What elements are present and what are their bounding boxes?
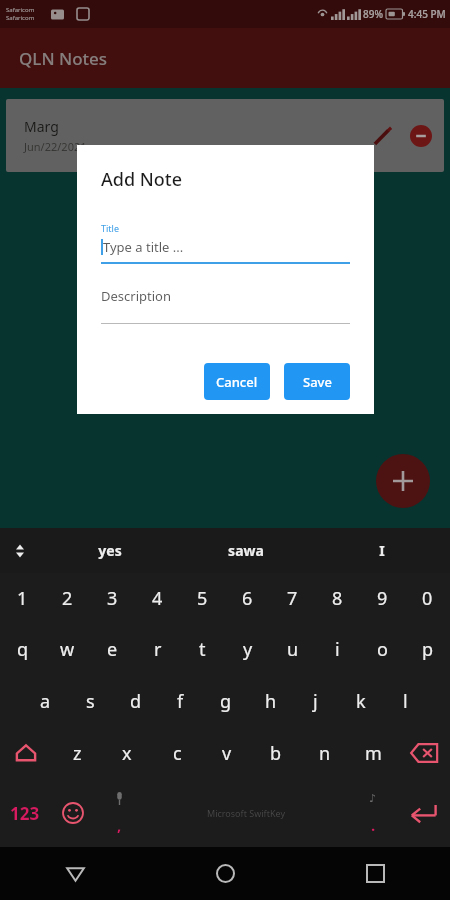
- button[interactable]: b: [251, 727, 300, 779]
- button[interactable]: 5: [180, 573, 225, 623]
- button[interactable]: o: [360, 623, 405, 675]
- staticText: w: [60, 637, 75, 662]
- button[interactable]: l: [383, 675, 428, 727]
- button[interactable]: Period and sticker: [350, 779, 396, 847]
- button[interactable]: Shift: [0, 727, 52, 779]
- staticText: 4:45 PM: [408, 7, 446, 21]
- button[interactable]: e: [90, 623, 135, 675]
- button[interactable]: g: [203, 675, 248, 727]
- button[interactable]: Microsoft SwiftKey: [142, 779, 350, 847]
- staticText: 89%: [363, 7, 383, 21]
- button[interactable]: Add note: [376, 454, 430, 508]
- button[interactable]: x: [102, 727, 152, 779]
- staticText: v: [222, 741, 232, 766]
- button[interactable]: f: [158, 675, 203, 727]
- staticText: QLN Notes: [19, 47, 108, 70]
- button[interactable]: z: [52, 727, 102, 779]
- button[interactable]: t: [180, 623, 225, 675]
- button[interactable]: 3: [90, 573, 135, 623]
- staticText: 0: [422, 586, 433, 611]
- button[interactable]: m: [349, 727, 398, 779]
- staticText: f: [177, 689, 184, 714]
- staticText: l: [403, 689, 408, 714]
- button[interactable]: c: [152, 727, 202, 779]
- button[interactable]: y: [225, 623, 270, 675]
- button[interactable]: Recent apps: [300, 847, 450, 900]
- button[interactable]: 7: [270, 573, 315, 623]
- staticText: z: [73, 741, 82, 766]
- staticText: 3: [107, 586, 118, 611]
- staticText: 7: [287, 586, 298, 611]
- staticText: 1: [17, 586, 28, 611]
- button[interactable]: Backspace: [398, 727, 450, 779]
- staticText: Title: [101, 222, 119, 234]
- staticText: 6: [242, 586, 253, 611]
- button[interactable]: Save: [284, 363, 350, 400]
- staticText: Description: [101, 287, 171, 305]
- button[interactable]: q: [0, 623, 45, 675]
- button[interactable]: 9: [360, 573, 405, 623]
- button[interactable]: Enter: [396, 779, 450, 847]
- staticText: x: [122, 741, 132, 766]
- button[interactable]: Back: [0, 847, 150, 900]
- staticText: e: [107, 637, 118, 662]
- button[interactable]: n: [300, 727, 349, 779]
- staticText: Type a title ...: [103, 238, 184, 256]
- staticText: 5: [197, 586, 208, 611]
- button[interactable]: sawa: [178, 528, 314, 573]
- staticText: t: [199, 637, 206, 662]
- button[interactable]: p: [405, 623, 450, 675]
- staticText: d: [130, 689, 142, 714]
- button[interactable]: r: [135, 623, 180, 675]
- staticText: k: [356, 689, 366, 714]
- button[interactable]: 2: [45, 573, 90, 623]
- button[interactable]: h: [248, 675, 293, 727]
- staticText: u: [287, 637, 299, 662]
- button[interactable]: 1: [0, 573, 45, 623]
- staticText: c: [173, 741, 182, 766]
- staticText: b: [270, 741, 282, 766]
- button[interactable]: 0: [405, 573, 450, 623]
- staticText: h: [265, 689, 277, 714]
- staticText: Marg: [24, 117, 59, 136]
- button[interactable]: Delete note: [404, 119, 438, 153]
- button[interactable]: Emoji: [50, 779, 96, 847]
- button[interactable]: Comma and voice input: [96, 779, 142, 847]
- button[interactable]: Edit note: [366, 119, 400, 153]
- staticText: 2: [62, 586, 73, 611]
- button[interactable]: 123: [0, 779, 50, 847]
- staticText: 8: [332, 586, 343, 611]
- staticText: j: [313, 689, 318, 714]
- staticText: 123: [10, 802, 40, 825]
- staticText: n: [319, 741, 331, 766]
- button[interactable]: 4: [135, 573, 180, 623]
- button[interactable]: k: [338, 675, 383, 727]
- button[interactable]: i: [315, 623, 360, 675]
- staticText: a: [40, 689, 51, 714]
- staticText: r: [154, 637, 162, 662]
- staticText: ♪: [369, 792, 377, 805]
- staticText: I: [379, 541, 385, 560]
- button[interactable]: d: [113, 675, 158, 727]
- staticText: Microsoft SwiftKey: [207, 807, 285, 819]
- button[interactable]: v: [202, 727, 251, 779]
- button[interactable]: u: [270, 623, 315, 675]
- button[interactable]: s: [68, 675, 113, 727]
- button[interactable]: yes: [42, 528, 178, 573]
- button[interactable]: Cancel: [204, 363, 270, 400]
- button[interactable]: Marg: [6, 99, 444, 172]
- staticText: g: [220, 689, 232, 714]
- button[interactable]: I: [314, 528, 450, 573]
- button[interactable]: Home: [150, 847, 300, 900]
- staticText: y: [243, 637, 253, 662]
- button[interactable]: 8: [315, 573, 360, 623]
- button[interactable]: w: [45, 623, 90, 675]
- staticText: Add Note: [101, 167, 182, 192]
- staticText: i: [335, 637, 340, 662]
- staticText: Cancel: [216, 373, 258, 391]
- button[interactable]: j: [293, 675, 338, 727]
- button[interactable]: 6: [225, 573, 270, 623]
- staticText: m: [365, 741, 382, 766]
- staticText: o: [377, 637, 388, 662]
- button[interactable]: a: [22, 675, 68, 727]
